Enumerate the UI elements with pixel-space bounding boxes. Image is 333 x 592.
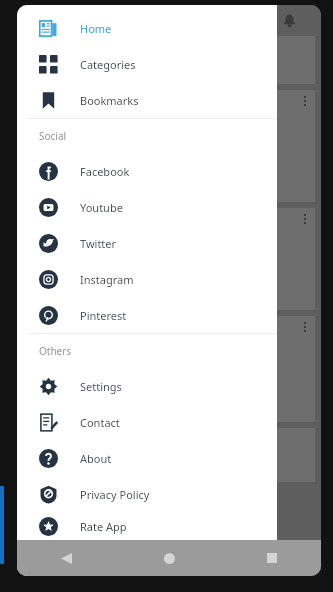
staticText: Twitter <box>80 236 117 251</box>
staticText: Pinterest <box>80 308 127 323</box>
staticText: Youtube <box>80 200 123 215</box>
button[interactable]: Bookmarks <box>17 82 277 118</box>
button[interactable]: About <box>17 440 277 476</box>
staticText: About <box>80 451 112 466</box>
staticText: Categories <box>80 57 136 72</box>
button[interactable]: Twitter <box>17 225 277 261</box>
button[interactable]: Youtube <box>17 189 277 225</box>
button[interactable]: Settings <box>17 368 277 404</box>
button[interactable]: Recents <box>259 545 285 571</box>
staticText: Instagram <box>80 272 134 287</box>
staticText: Home <box>80 21 112 36</box>
staticText: Settings <box>80 379 122 394</box>
staticText: Facebook <box>80 164 130 179</box>
button[interactable]: Pinterest <box>17 297 277 333</box>
staticText: Privacy Policy <box>80 487 150 502</box>
button[interactable]: Back <box>53 545 79 571</box>
staticText: Bookmarks <box>80 93 139 108</box>
staticText: Others <box>39 344 72 358</box>
button[interactable]: Home <box>17 10 277 46</box>
button[interactable]: Home <box>156 545 182 571</box>
button[interactable]: Instagram <box>17 261 277 297</box>
button[interactable]: Privacy Policy <box>17 476 277 512</box>
button[interactable]: Rate App <box>17 512 277 540</box>
staticText: Rate App <box>80 519 127 534</box>
staticText: Contact <box>80 415 120 430</box>
button[interactable]: Categories <box>17 46 277 82</box>
button[interactable]: Contact <box>17 404 277 440</box>
button[interactable]: Facebook <box>17 153 277 189</box>
staticText: Social <box>39 129 67 143</box>
